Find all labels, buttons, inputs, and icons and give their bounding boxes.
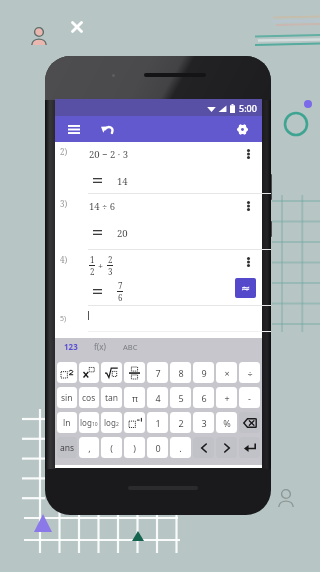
button[interactable] bbox=[216, 437, 237, 458]
staticText: 2 bbox=[178, 417, 184, 429]
button[interactable]: - bbox=[239, 387, 260, 408]
button[interactable]: π bbox=[124, 387, 145, 408]
staticText: + bbox=[98, 259, 104, 271]
button[interactable] bbox=[124, 412, 145, 433]
staticText: 20 − 2 · 3 bbox=[89, 148, 128, 161]
staticText: 4 bbox=[155, 392, 161, 404]
button[interactable]: 7 bbox=[147, 362, 168, 383]
staticText: cos bbox=[82, 392, 96, 404]
staticText: ABC bbox=[123, 342, 138, 352]
button[interactable]: cos bbox=[79, 387, 99, 408]
staticText: 1 bbox=[155, 417, 161, 429]
button[interactable]: sin bbox=[57, 387, 77, 408]
staticText: 6 bbox=[201, 392, 207, 404]
staticText: 5) bbox=[60, 314, 67, 324]
button[interactable]: 2 bbox=[170, 412, 191, 433]
staticText: 7 bbox=[155, 367, 161, 379]
button[interactable]: More options bbox=[240, 198, 256, 214]
button[interactable]: Settings bbox=[232, 119, 252, 139]
staticText: ans bbox=[60, 442, 75, 454]
button[interactable]: , bbox=[79, 437, 99, 458]
button[interactable]: log bbox=[101, 412, 122, 433]
button[interactable]: Approximate result bbox=[235, 278, 256, 298]
button[interactable] bbox=[239, 412, 260, 433]
staticText: × bbox=[224, 367, 230, 379]
button[interactable] bbox=[239, 437, 260, 458]
staticText: ( bbox=[110, 442, 113, 454]
staticText: ) bbox=[133, 442, 136, 454]
button[interactable]: More options bbox=[240, 254, 256, 270]
staticText: 5 bbox=[178, 392, 184, 404]
button[interactable]: 123 bbox=[56, 338, 86, 355]
staticText: 123 bbox=[64, 341, 78, 352]
button[interactable]: 2) bbox=[55, 142, 262, 194]
staticText: log bbox=[80, 417, 92, 428]
staticText: 10 bbox=[92, 421, 98, 428]
button[interactable]: ans bbox=[57, 437, 77, 458]
button[interactable]: 9 bbox=[193, 362, 214, 383]
button[interactable]: 3) bbox=[55, 194, 262, 250]
button[interactable]: . bbox=[170, 437, 191, 458]
button[interactable]: × bbox=[216, 362, 237, 383]
button[interactable]: + bbox=[216, 387, 237, 408]
staticText: 3 bbox=[108, 266, 113, 277]
button[interactable]: 5) bbox=[55, 306, 262, 338]
staticText: , bbox=[88, 442, 91, 454]
staticText: - bbox=[248, 392, 251, 404]
staticText: ≈ bbox=[241, 282, 251, 295]
button[interactable] bbox=[101, 362, 122, 383]
staticText: + bbox=[224, 392, 230, 404]
button[interactable]: More options bbox=[240, 146, 256, 162]
button[interactable]: ( bbox=[101, 437, 122, 458]
button[interactable]: Undo bbox=[94, 116, 120, 142]
button[interactable]: 4 bbox=[147, 387, 168, 408]
button[interactable]: tan bbox=[101, 387, 122, 408]
staticText: 5:00 bbox=[239, 102, 257, 114]
staticText: 8 bbox=[178, 367, 184, 379]
staticText: log bbox=[104, 417, 116, 428]
staticText: 6 bbox=[118, 292, 123, 303]
staticText: 2) bbox=[60, 146, 68, 157]
button[interactable]: ) bbox=[124, 437, 145, 458]
staticText: 0 bbox=[155, 442, 161, 454]
staticText: % bbox=[223, 417, 231, 429]
button[interactable]: ln bbox=[57, 412, 77, 433]
staticText: . bbox=[179, 442, 182, 454]
staticText: 9 bbox=[201, 367, 207, 379]
button[interactable]: 5 bbox=[170, 387, 191, 408]
button[interactable]: 4) bbox=[55, 250, 262, 306]
staticText: 1 bbox=[90, 254, 95, 265]
staticText: ln bbox=[63, 417, 71, 429]
staticText: 2 bbox=[116, 421, 119, 428]
button[interactable]: Menu bbox=[61, 116, 86, 142]
button[interactable]: ABC bbox=[114, 338, 146, 355]
staticText: 20 bbox=[117, 227, 128, 240]
button[interactable]: 0 bbox=[147, 437, 168, 458]
button[interactable]: 8 bbox=[170, 362, 191, 383]
button[interactable]: 1 bbox=[147, 412, 168, 433]
staticText: ÷ bbox=[247, 367, 253, 379]
staticText: 3 bbox=[201, 417, 207, 429]
staticText: sin bbox=[61, 392, 73, 404]
staticText: 3) bbox=[60, 198, 68, 209]
staticText: 4) bbox=[60, 254, 68, 265]
staticText: 14 bbox=[117, 175, 128, 188]
button[interactable] bbox=[79, 362, 99, 383]
button[interactable]: ÷ bbox=[239, 362, 260, 383]
staticText: tan bbox=[105, 392, 119, 404]
button[interactable] bbox=[193, 437, 214, 458]
staticText: 7 bbox=[118, 280, 123, 291]
button[interactable]: 6 bbox=[193, 387, 214, 408]
staticText: 14 ÷ 6 bbox=[89, 200, 116, 213]
button[interactable] bbox=[124, 362, 145, 383]
staticText: π bbox=[132, 392, 138, 404]
button[interactable]: % bbox=[216, 412, 237, 433]
button[interactable]: log bbox=[79, 412, 99, 433]
button[interactable] bbox=[57, 362, 77, 383]
staticText: 2 bbox=[90, 266, 95, 277]
staticText: 2 bbox=[108, 254, 113, 265]
button[interactable]: 3 bbox=[193, 412, 214, 433]
button[interactable]: f(x) bbox=[86, 338, 114, 355]
staticText: f(x) bbox=[94, 341, 106, 352]
